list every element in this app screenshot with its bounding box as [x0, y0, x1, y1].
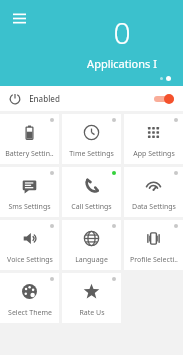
staticText: Select Theme	[8, 308, 52, 318]
staticText: Enabled	[29, 93, 60, 104]
button[interactable]: Data Settings	[124, 167, 183, 217]
staticText: Language	[75, 255, 108, 265]
button[interactable]: Voice Settings	[0, 220, 59, 270]
button[interactable]: Enabled	[0, 86, 183, 111]
staticText: Applications I	[87, 56, 157, 71]
staticText: Time Settings	[69, 149, 114, 159]
button[interactable]: Battery Settin..	[0, 114, 59, 164]
staticText: App Settings	[133, 149, 175, 159]
staticText: 0	[113, 12, 131, 53]
button[interactable]: App Settings	[124, 114, 183, 164]
staticText: Battery Settin..	[5, 149, 54, 159]
staticText: Data Settings	[132, 202, 176, 212]
staticText: Voice Settings	[7, 255, 53, 265]
button[interactable]: Time Settings	[62, 114, 121, 164]
button[interactable]: Profile Selecti..	[124, 220, 183, 270]
staticText: Profile Selecti..	[130, 255, 178, 265]
staticText: Call Settings	[71, 202, 112, 212]
button[interactable]: Language	[62, 220, 121, 270]
staticText: Sms Settings	[8, 202, 51, 212]
button[interactable]: Sms Settings	[0, 167, 59, 217]
button[interactable]: Rate Us	[62, 273, 121, 323]
button[interactable]: Menu	[6, 5, 32, 31]
button[interactable]: Call Settings	[62, 167, 121, 217]
staticText: Rate Us	[79, 308, 105, 318]
button[interactable]: Select Theme	[0, 273, 59, 323]
